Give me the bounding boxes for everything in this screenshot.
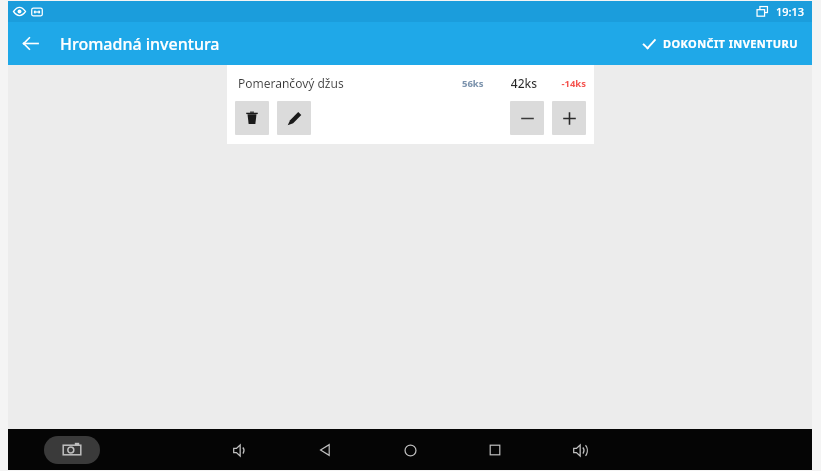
staticText: 56ks: [462, 77, 502, 90]
staticText: -14ks: [546, 77, 586, 90]
button[interactable]: Back: [8, 22, 52, 65]
button[interactable]: Volume down: [220, 430, 260, 470]
button[interactable]: Edit: [277, 101, 311, 135]
button[interactable]: Pomerančový džus: [227, 65, 594, 144]
button[interactable]: Delete: [235, 101, 269, 135]
staticText: 42ks: [502, 75, 546, 91]
button[interactable]: Volume up: [560, 430, 600, 470]
staticText: Hromadná inventura: [60, 33, 220, 55]
button[interactable]: Screenshot: [44, 436, 100, 464]
button[interactable]: Decrease: [510, 101, 544, 135]
staticText: DOKONČIT INVENTURU: [663, 36, 798, 51]
button[interactable]: DOKONČIT INVENTURU: [628, 28, 812, 59]
staticText: 19:13: [776, 4, 805, 19]
button[interactable]: Increase: [552, 101, 586, 135]
button[interactable]: Recents: [475, 430, 515, 470]
button[interactable]: Back: [305, 430, 345, 470]
staticText: Pomerančový džus: [238, 75, 344, 91]
button[interactable]: Home: [390, 430, 430, 470]
